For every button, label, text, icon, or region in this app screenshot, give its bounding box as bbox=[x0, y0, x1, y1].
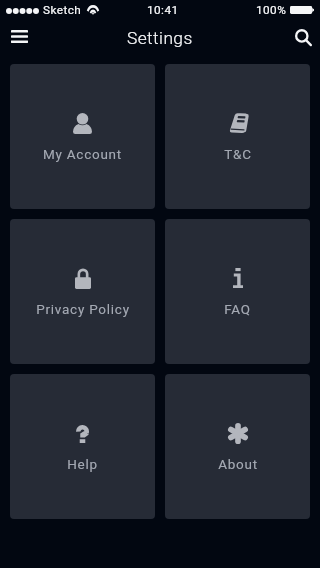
button[interactable]: Search bbox=[281, 15, 320, 59]
staticText: Privacy Policy bbox=[36, 301, 130, 317]
button[interactable]: About bbox=[165, 374, 310, 519]
button[interactable]: T&C bbox=[165, 64, 310, 209]
staticText: Settings bbox=[127, 28, 193, 48]
staticText: My Account bbox=[43, 146, 122, 162]
button[interactable]: My Account bbox=[10, 64, 155, 209]
staticText: Help bbox=[67, 456, 98, 472]
button[interactable]: FAQ bbox=[165, 219, 310, 364]
staticText: 100% bbox=[256, 3, 287, 17]
staticText: FAQ bbox=[224, 301, 251, 317]
button[interactable]: Open navigation menu bbox=[0, 14, 41, 58]
staticText: About bbox=[218, 456, 258, 472]
staticText: T&C bbox=[224, 146, 252, 162]
staticText: 10:41 bbox=[147, 3, 179, 17]
button[interactable]: Help bbox=[10, 374, 155, 519]
staticText: Sketch bbox=[43, 3, 82, 17]
button[interactable]: Privacy Policy bbox=[10, 219, 155, 364]
